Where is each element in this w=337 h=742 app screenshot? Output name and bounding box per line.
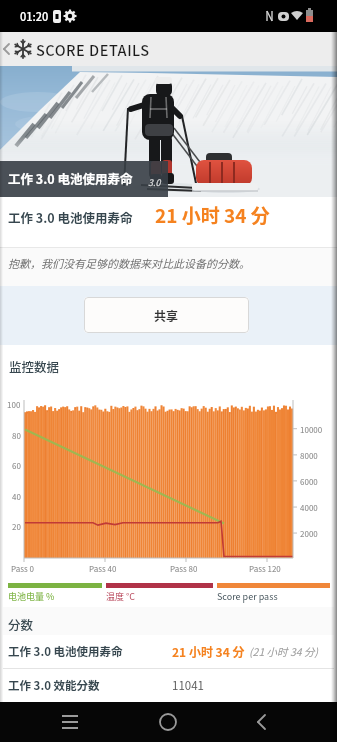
staticText: 工作 3.0 电池使用寿命 [8, 169, 133, 187]
staticText: 3.0 [148, 176, 161, 189]
staticText: 60 [12, 460, 21, 472]
staticText: 21 小时 34 分 [155, 201, 270, 229]
staticText: 分数 [8, 615, 34, 633]
staticText: 100 [7, 399, 21, 411]
button[interactable]: SCORE DETAILS [0, 32, 337, 66]
staticText: 温度 °C [106, 590, 136, 603]
staticText: 工作 3.0 效能分数 [8, 677, 100, 694]
staticText: 抱歉，我们没有足够的数据来对比此设备的分数。 [8, 255, 250, 271]
staticText: 工作 3.0 电池使用寿命 [8, 643, 123, 660]
staticText: 电池电量 % [8, 590, 55, 603]
button[interactable] [246, 706, 278, 738]
button[interactable] [54, 706, 86, 738]
staticText: 80 [12, 430, 21, 442]
staticText: 6000 [300, 476, 318, 488]
button[interactable]: 工作 3.0 效能分数 [3, 669, 334, 702]
staticText: Score per pass [217, 590, 278, 603]
staticText: 监控数据 [9, 357, 60, 375]
staticText: Pass 120 [249, 563, 281, 575]
staticText: 共享 [154, 307, 179, 324]
staticText: 40 [12, 491, 21, 503]
staticText: 4000 [300, 502, 318, 514]
staticText: 2000 [300, 528, 318, 540]
button[interactable]: 工作 3.0 电池使用寿命 [3, 635, 334, 668]
button[interactable] [152, 706, 184, 738]
staticText: 11041 [172, 677, 204, 694]
staticText: (21 小时 34 分) [249, 644, 318, 659]
staticText: Pass 80 [170, 563, 198, 575]
button[interactable]: 共享 [84, 297, 249, 333]
staticText: 10000 [300, 424, 323, 436]
staticText: 8000 [300, 450, 318, 462]
staticText: Pass 40 [89, 563, 117, 575]
staticText: 01:20 [20, 8, 49, 24]
staticText: 工作 3.0 电池使用寿命 [8, 208, 133, 226]
staticText: 20 [12, 521, 21, 533]
staticText: SCORE DETAILS [36, 39, 150, 60]
staticText: 21 小时 34 分 [172, 643, 245, 660]
staticText: Pass 0 [11, 563, 34, 575]
